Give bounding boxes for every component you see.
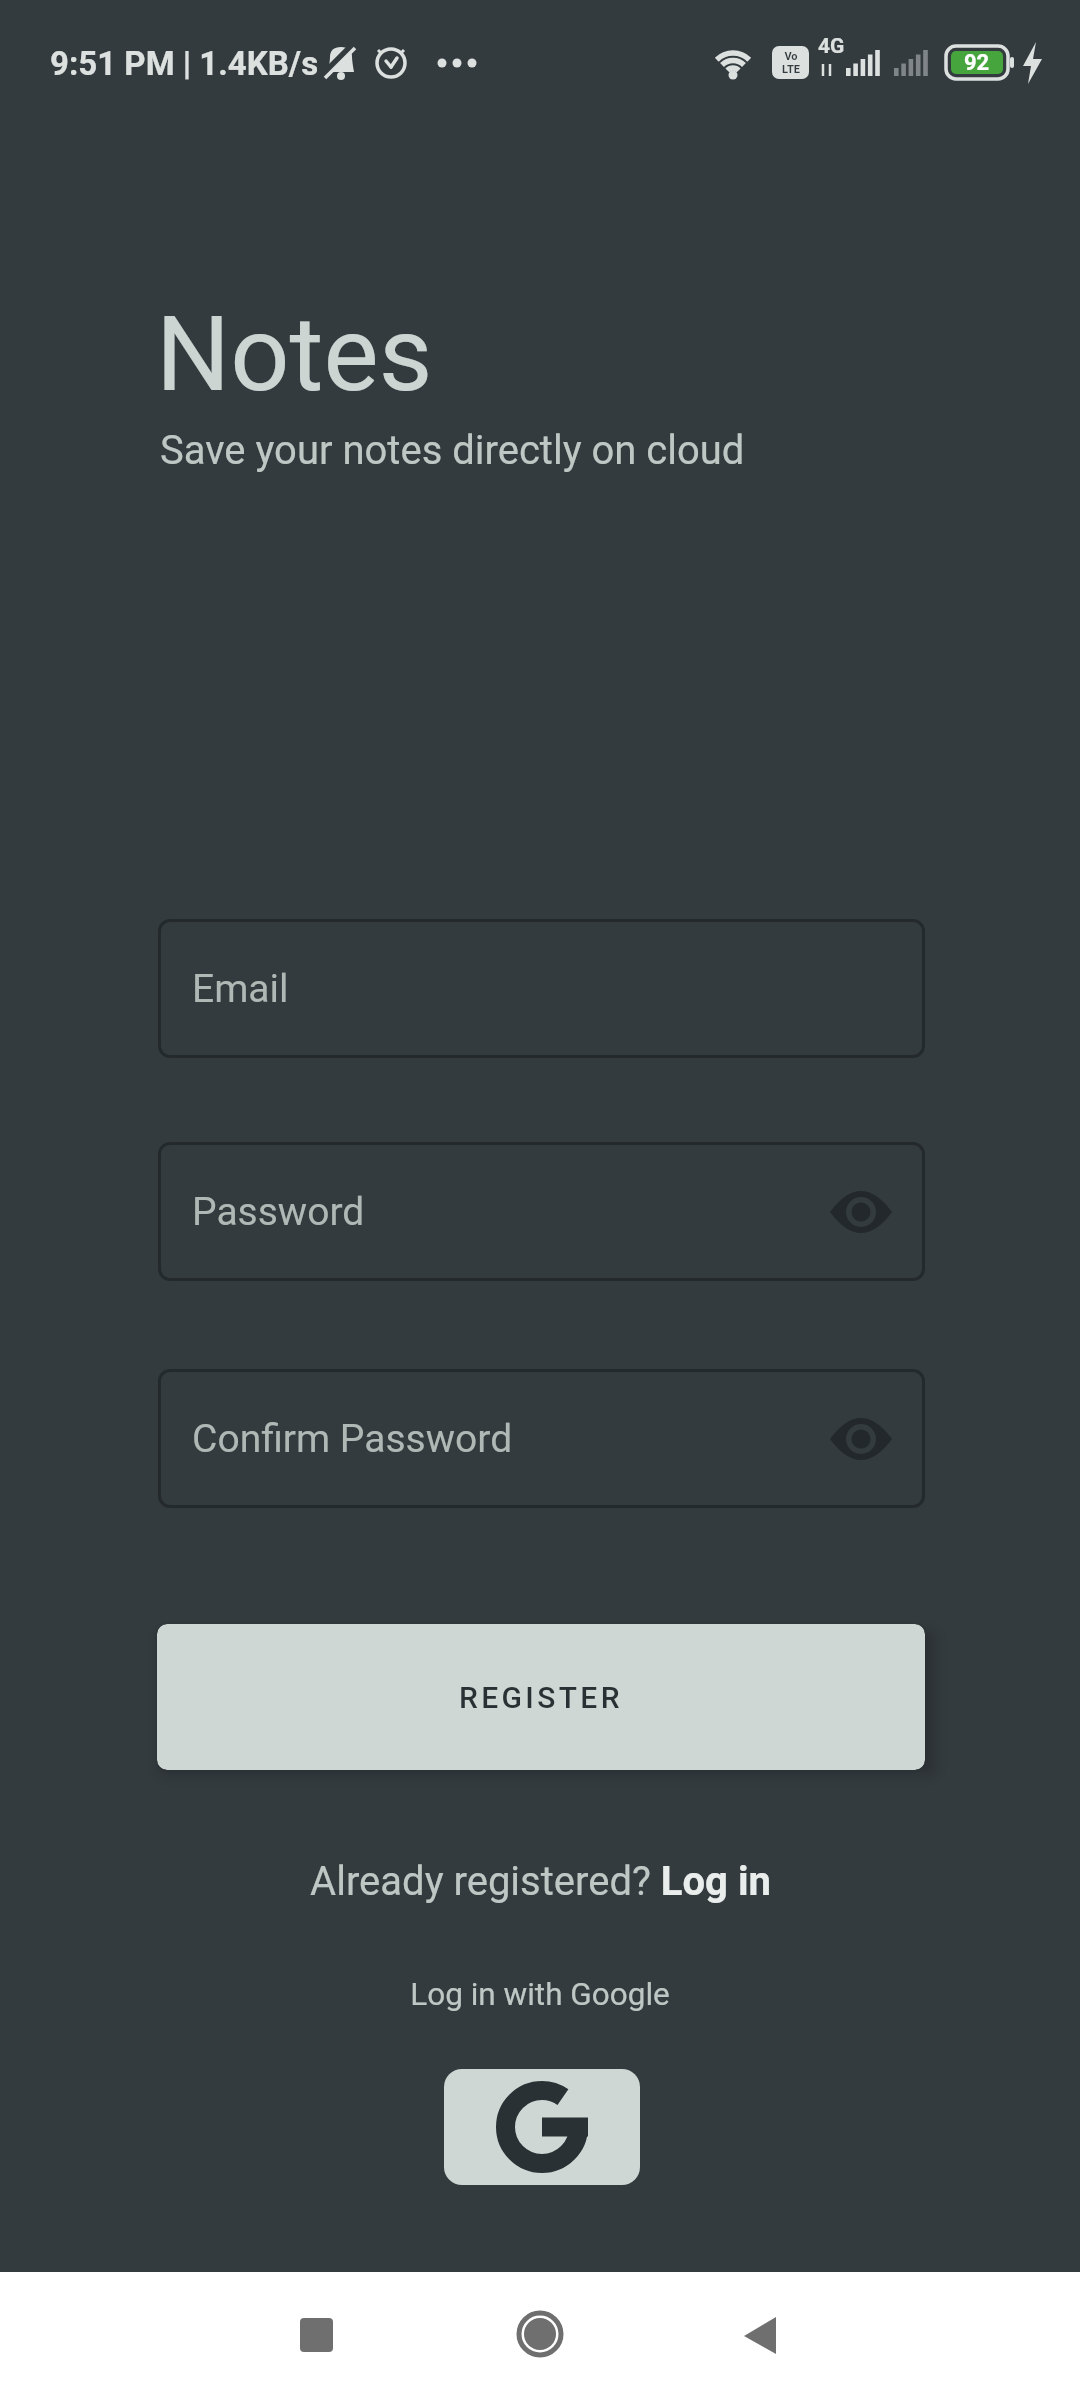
button[interactable]	[360, 2272, 720, 2400]
staticText: 92	[964, 50, 990, 76]
staticText: REGISTER	[459, 1680, 623, 1715]
button[interactable]: Password	[158, 1142, 925, 1281]
button[interactable]: Confirm Password	[158, 1369, 925, 1508]
staticText: Notes	[156, 294, 433, 416]
button[interactable]: Email	[158, 919, 925, 1058]
staticText: Email	[192, 966, 289, 1012]
staticText: Log in with Google	[0, 1976, 1080, 2013]
button[interactable]: Already registered? Log in	[310, 1858, 771, 1905]
staticText: Password	[192, 1189, 365, 1235]
staticText: 9:51 PM | 1.4KB/s	[50, 44, 319, 83]
staticText: Save your notes directly on cloud	[160, 427, 745, 474]
staticText: Confirm Password	[192, 1416, 513, 1462]
button[interactable]	[444, 2069, 640, 2185]
button[interactable]	[720, 2272, 1080, 2400]
button[interactable]: REGISTER	[157, 1624, 925, 1770]
staticText: 4G	[818, 34, 845, 59]
staticText: Vo LTE	[782, 50, 800, 75]
button[interactable]	[0, 2272, 360, 2400]
